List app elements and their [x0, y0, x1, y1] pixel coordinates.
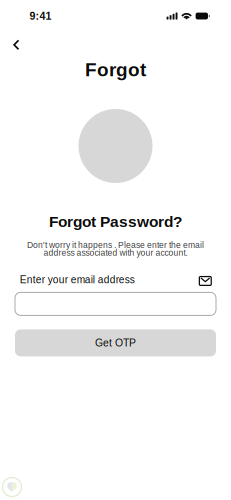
staticText: 9:41 — [29, 10, 51, 22]
button[interactable]: Back — [0, 22, 30, 59]
staticText: address associated with your account. — [43, 248, 187, 257]
staticText: Don't worry it happens . Please enter th… — [27, 240, 204, 250]
button[interactable]: Enter your email address — [15, 292, 216, 315]
staticText: Forgot — [85, 59, 146, 80]
staticText: Enter your email address — [20, 274, 135, 285]
button[interactable]: Get OTP — [15, 329, 216, 356]
staticText: Forgot Password? — [49, 213, 182, 230]
staticText: Get OTP — [95, 337, 136, 349]
